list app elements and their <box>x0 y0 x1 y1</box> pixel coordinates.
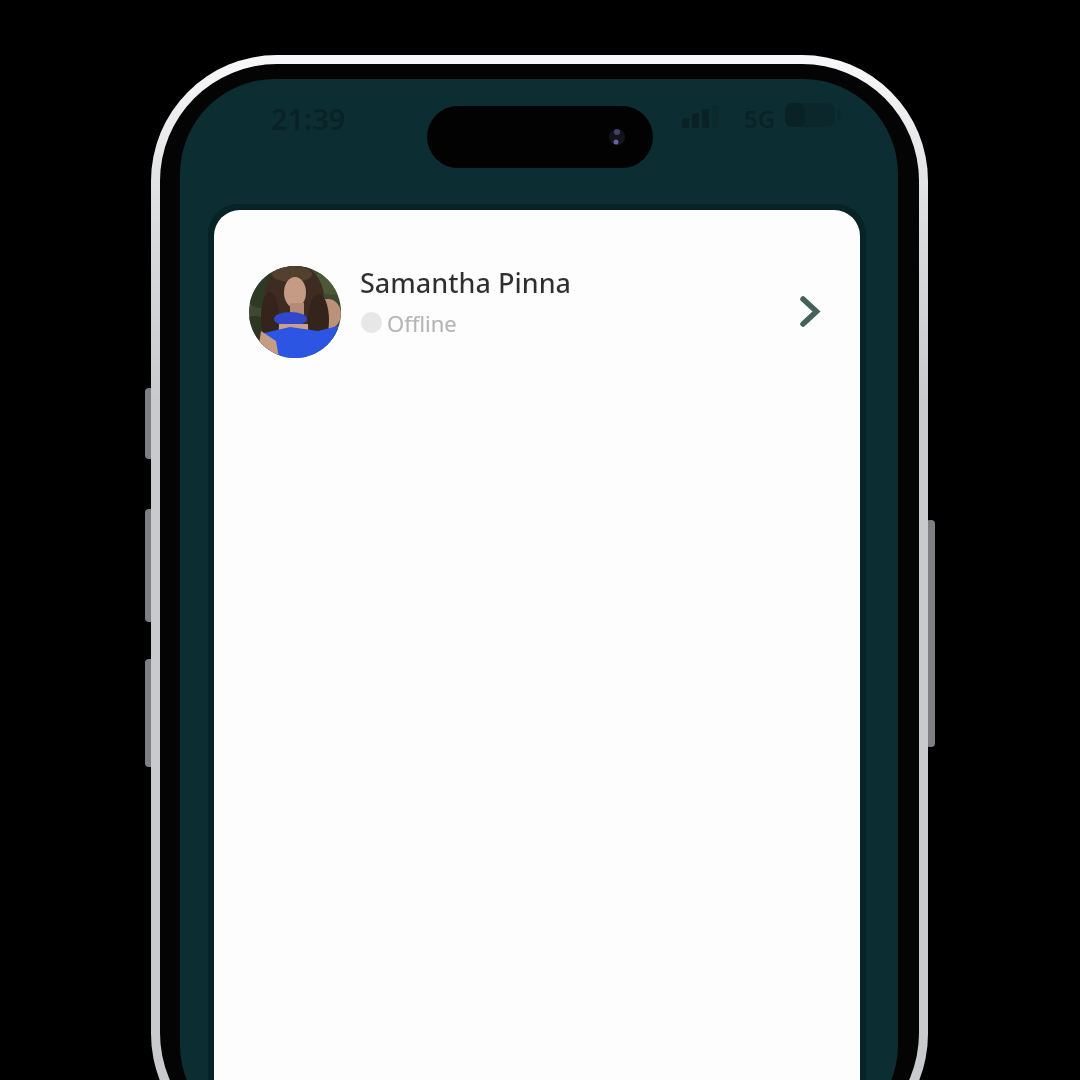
staticText: 21:39 <box>271 99 346 133</box>
button[interactable]: Samantha Pinna <box>232 250 844 374</box>
staticText: 5G <box>744 102 776 130</box>
staticText: Samantha Pinna <box>360 264 572 300</box>
staticText: Offline <box>387 308 457 338</box>
